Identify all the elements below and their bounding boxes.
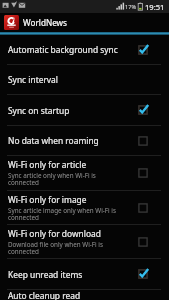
staticText: Sync interval [8, 74, 58, 85]
button[interactable]: Auto cleanup read [0, 290, 169, 300]
button[interactable]: Automatic background sync [0, 35, 169, 64]
other: Toggle [136, 44, 150, 56]
staticText: Automatic background sync [8, 44, 118, 55]
other: Toggle [136, 104, 150, 116]
other: Toggle [136, 236, 150, 248]
button[interactable]: WorldNews [0, 13, 169, 32]
button[interactable]: Wi-Fi only for download [0, 225, 169, 258]
other: Toggle [136, 202, 150, 214]
staticText: Wi-Fi only for image [8, 194, 87, 205]
button[interactable]: No data when roaming [0, 126, 169, 155]
staticText: Download file only when Wi-Fi is connect… [8, 240, 103, 256]
staticText: Sync article only when Wi-Fi is connecte… [8, 171, 96, 187]
staticText: Sync on startup [8, 105, 70, 116]
staticText: Wi-Fi only for article [8, 159, 87, 170]
staticText: Auto cleanup read [8, 290, 81, 300]
other: Toggle [136, 167, 150, 179]
staticText: No data when roaming [8, 135, 99, 146]
staticText: WorldNews [23, 17, 67, 28]
button[interactable]: Wi-Fi only for image [0, 191, 169, 224]
button[interactable]: Sync interval [0, 65, 169, 94]
button[interactable]: Wi-Fi only for article [0, 156, 169, 190]
staticText: Sync article image only when Wi-Fi is co… [8, 206, 116, 222]
other: Toggle [136, 135, 150, 147]
staticText: 19:51 [145, 2, 165, 12]
other: Toggle [136, 268, 150, 280]
staticText: Wi-Fi only for download [8, 228, 101, 239]
button[interactable]: Keep unread items [0, 259, 169, 289]
staticText: 17% [125, 3, 137, 11]
button[interactable]: Sync on startup [0, 95, 169, 125]
staticText: Keep unread items [8, 269, 83, 280]
